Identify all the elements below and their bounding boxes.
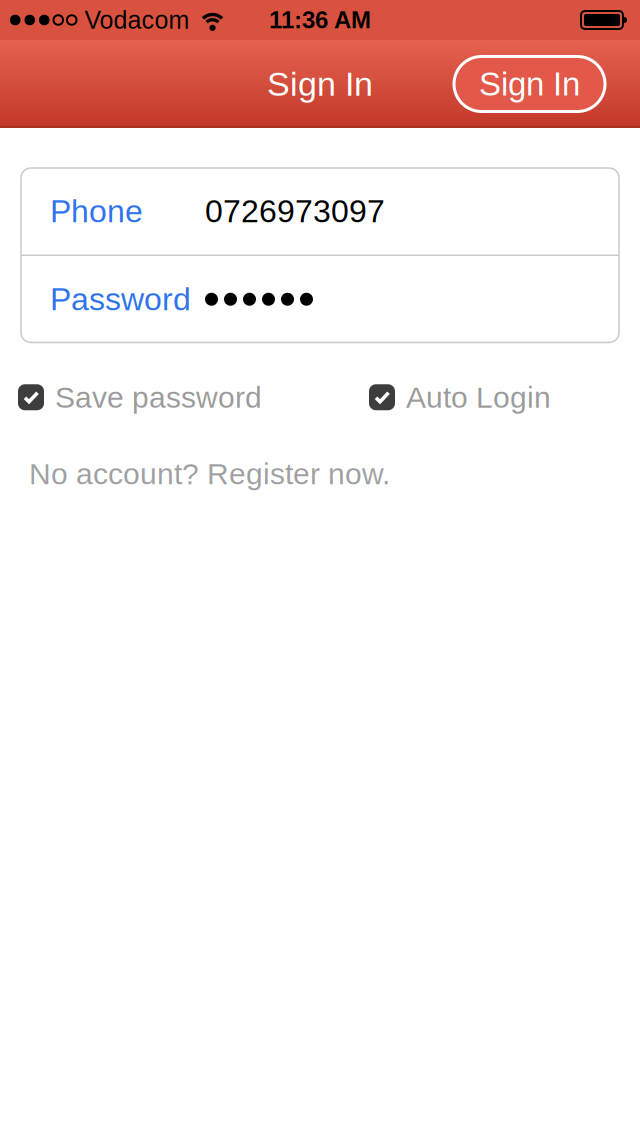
staticText: No account? Register now. xyxy=(29,457,390,490)
staticText: Password xyxy=(50,281,191,317)
staticText: 0726973097 xyxy=(205,193,385,229)
button[interactable]: No account? Register now. xyxy=(29,457,390,490)
staticText: Save password xyxy=(55,380,262,414)
button[interactable]: Auto Login xyxy=(369,380,551,414)
button[interactable]: Phone xyxy=(21,168,619,254)
button[interactable]: Password xyxy=(21,256,619,342)
button[interactable]: Save password xyxy=(18,380,262,414)
staticText: Auto Login xyxy=(406,380,551,414)
staticText: Vodacom xyxy=(84,6,189,34)
staticText: Sign In xyxy=(267,65,373,103)
button[interactable]: Sign In xyxy=(454,56,605,111)
staticText: 11:36 AM xyxy=(269,7,371,33)
staticText: Phone xyxy=(50,193,143,229)
staticText: Sign In xyxy=(479,66,580,102)
